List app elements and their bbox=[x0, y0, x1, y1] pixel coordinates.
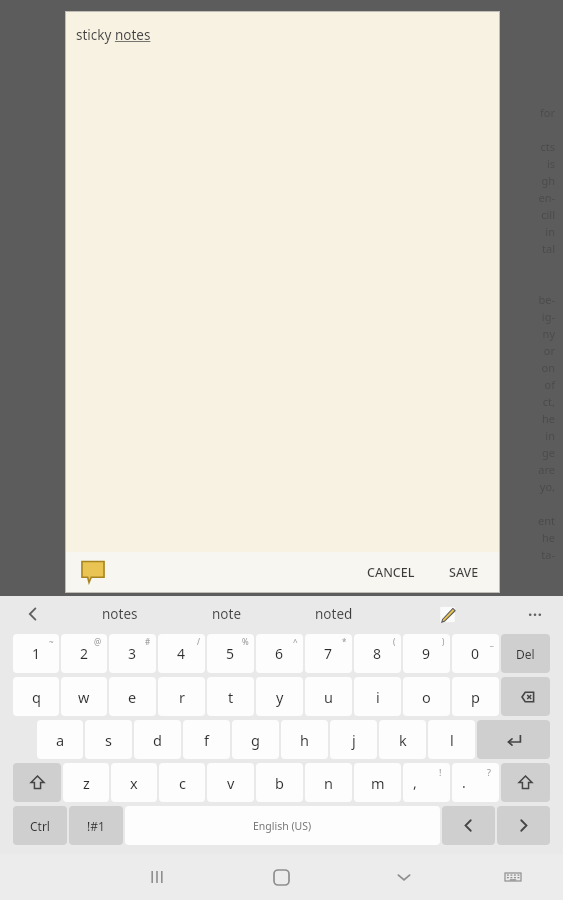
staticText: 5 bbox=[226, 644, 235, 663]
button[interactable]: x bbox=[111, 763, 157, 802]
staticText: 7 bbox=[324, 644, 333, 663]
button[interactable]: 7 bbox=[305, 634, 352, 673]
staticText: notes bbox=[102, 605, 138, 623]
staticText: # bbox=[145, 636, 151, 647]
button[interactable]: v bbox=[207, 763, 254, 802]
button[interactable]: English (US) bbox=[125, 806, 440, 845]
button[interactable]: 8 bbox=[354, 634, 401, 673]
button[interactable]: 9 bbox=[403, 634, 450, 673]
button[interactable]: e bbox=[109, 677, 156, 716]
staticText: !#1 bbox=[87, 818, 105, 834]
button[interactable]: Move cursor left bbox=[442, 806, 495, 845]
button[interactable]: m bbox=[354, 763, 401, 802]
button[interactable]: 2 bbox=[61, 634, 107, 673]
button[interactable]: b bbox=[256, 763, 303, 802]
button[interactable]: Note colour bbox=[78, 557, 108, 587]
staticText: g bbox=[251, 730, 260, 750]
button[interactable]: . bbox=[452, 763, 499, 802]
staticText: k bbox=[399, 730, 407, 750]
button[interactable]: r bbox=[158, 677, 205, 716]
staticText: n bbox=[324, 773, 333, 793]
button[interactable]: i bbox=[354, 677, 401, 716]
button[interactable]: 3 bbox=[109, 634, 156, 673]
staticText: CANCEL bbox=[367, 564, 415, 581]
staticText: r bbox=[179, 687, 185, 707]
staticText: x bbox=[130, 773, 138, 793]
button[interactable]: Shift bbox=[13, 763, 61, 802]
button[interactable]: , bbox=[403, 763, 450, 802]
staticText: u bbox=[324, 687, 333, 707]
staticText: ^ bbox=[293, 636, 298, 647]
staticText: % bbox=[242, 636, 249, 647]
staticText: @ bbox=[94, 636, 102, 647]
button[interactable]: k bbox=[379, 720, 426, 759]
button[interactable]: 4 bbox=[158, 634, 205, 673]
button[interactable]: a bbox=[37, 720, 83, 759]
button[interactable]: u bbox=[305, 677, 352, 716]
button[interactable]: 0 bbox=[452, 634, 499, 673]
button[interactable]: Recent apps bbox=[135, 855, 179, 899]
button[interactable]: Shift bbox=[501, 763, 550, 802]
button[interactable]: g bbox=[232, 720, 279, 759]
button[interactable]: 6 bbox=[256, 634, 303, 673]
button[interactable]: noted bbox=[280, 596, 387, 632]
button[interactable]: SAVE bbox=[441, 558, 487, 587]
button[interactable]: Move cursor right bbox=[497, 806, 550, 845]
button[interactable]: Change keyboard bbox=[492, 856, 534, 898]
staticText: w bbox=[78, 687, 90, 707]
button[interactable]: q bbox=[13, 677, 59, 716]
button[interactable]: f bbox=[183, 720, 230, 759]
button[interactable]: c bbox=[159, 763, 205, 802]
button[interactable]: t bbox=[207, 677, 254, 716]
staticText: 2 bbox=[80, 644, 89, 663]
button[interactable]: Write bbox=[387, 596, 507, 632]
staticText: , bbox=[413, 773, 417, 792]
button[interactable]: Previous bbox=[0, 596, 66, 632]
button[interactable]: Hide keyboard bbox=[382, 855, 426, 899]
button[interactable]: s bbox=[85, 720, 132, 759]
button[interactable]: note bbox=[173, 596, 280, 632]
button[interactable]: j bbox=[330, 720, 377, 759]
button[interactable]: z bbox=[63, 763, 109, 802]
button[interactable]: l bbox=[428, 720, 475, 759]
button[interactable]: h bbox=[281, 720, 328, 759]
button[interactable]: Enter bbox=[477, 720, 550, 759]
button[interactable]: notes bbox=[66, 596, 173, 632]
staticText: i bbox=[376, 687, 380, 707]
button[interactable]: sticky notes bbox=[66, 12, 499, 552]
button[interactable]: More options bbox=[507, 596, 563, 632]
button[interactable]: y bbox=[256, 677, 303, 716]
staticText: 9 bbox=[422, 644, 431, 663]
staticText: l bbox=[450, 730, 454, 750]
button[interactable]: Ctrl bbox=[13, 806, 67, 845]
button[interactable]: w bbox=[61, 677, 107, 716]
button[interactable]: !#1 bbox=[69, 806, 123, 845]
staticText: 0 bbox=[471, 644, 480, 663]
button[interactable]: CANCEL bbox=[359, 558, 423, 587]
button[interactable]: 1 bbox=[13, 634, 59, 673]
staticText: d bbox=[153, 730, 162, 750]
button[interactable]: Home bbox=[259, 855, 303, 899]
staticText: note bbox=[212, 605, 241, 623]
button[interactable]: Del bbox=[501, 634, 550, 673]
staticText: English (US) bbox=[253, 819, 312, 833]
button[interactable]: p bbox=[452, 677, 499, 716]
button[interactable]: Backspace bbox=[501, 677, 550, 716]
button[interactable]: d bbox=[134, 720, 181, 759]
button[interactable]: 5 bbox=[207, 634, 254, 673]
staticText: tion should be used. Because magnetic re… bbox=[66, 596, 444, 610]
staticText: Ctrl bbox=[30, 818, 50, 834]
button[interactable]: n bbox=[305, 763, 352, 802]
button[interactable]: o bbox=[403, 677, 450, 716]
